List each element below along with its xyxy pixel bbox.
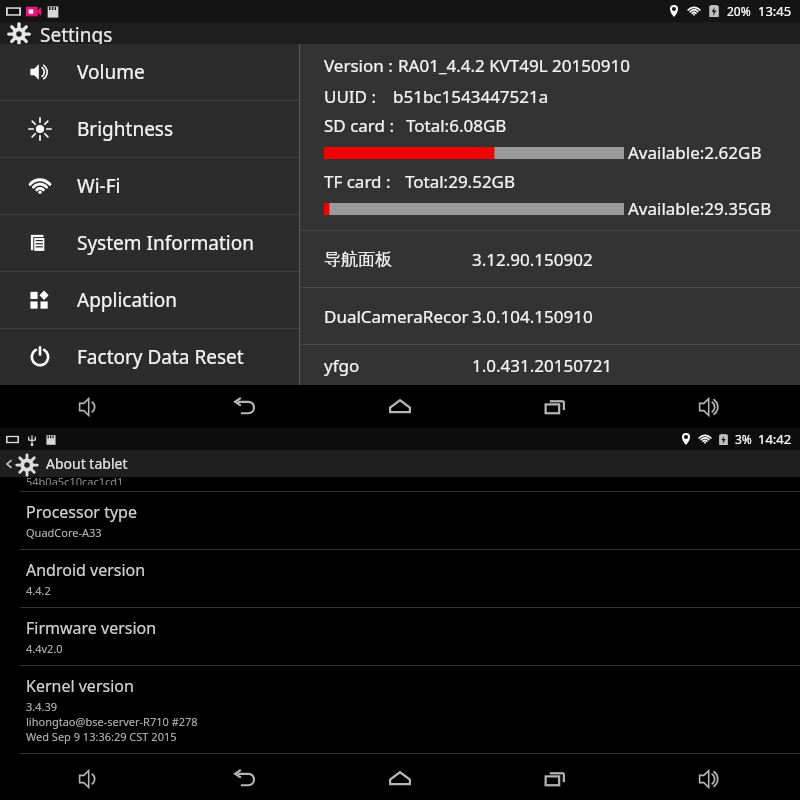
button[interactable]: Firmware version — [0, 608, 800, 665]
staticText: yfgo — [324, 354, 360, 377]
staticText: b51bc1543447521a — [393, 85, 549, 108]
button[interactable]: Home — [376, 387, 424, 427]
button[interactable]: Brightness — [0, 101, 299, 157]
button[interactable]: Processor type — [0, 492, 800, 549]
staticText: Factory Data Reset — [77, 344, 244, 370]
staticText: 13:45 — [758, 2, 792, 20]
button[interactable]: Home — [376, 759, 424, 799]
staticText: 3.12.90.150902 — [472, 248, 593, 271]
staticText: 4.4.2 — [26, 583, 51, 598]
staticText: Firmware version — [26, 617, 157, 639]
button[interactable]: Volume up — [686, 387, 734, 427]
button[interactable]: Volume down — [66, 387, 114, 427]
staticText: TF card : — [324, 170, 391, 193]
staticText: 3% — [735, 431, 752, 447]
staticText: Kernel version — [26, 675, 134, 697]
staticText: lihongtao@bse-server-R710 #278 — [26, 714, 198, 729]
button[interactable]: System Information — [0, 215, 299, 271]
staticText: Brightness — [77, 116, 174, 142]
staticText: SD card : — [324, 114, 394, 137]
staticText: Total:29.52GB — [405, 170, 516, 193]
staticText: Version : — [324, 54, 398, 77]
staticText: 4.4v2.0 — [26, 641, 63, 656]
button[interactable]: Recents — [531, 759, 579, 799]
button[interactable]: Recents — [531, 387, 579, 427]
button[interactable]: DualCameraRecord — [300, 288, 800, 344]
button[interactable]: 导航面板 — [300, 231, 800, 287]
button[interactable]: Back — [221, 759, 269, 799]
button[interactable]: Kernel version — [0, 666, 800, 753]
staticText: Application — [77, 287, 178, 313]
staticText: 54b0a5c10cac1cd1 — [26, 474, 124, 485]
staticText: 20% — [727, 3, 751, 19]
staticText: Android version — [26, 559, 146, 581]
staticText: Wed Sep 9 13:36:29 CST 2015 — [26, 729, 177, 744]
button[interactable]: Factory Data Reset — [0, 329, 299, 385]
staticText: Volume — [77, 59, 145, 85]
staticText: 导航面板 — [324, 249, 392, 270]
staticText: Total:6.08GB — [406, 114, 507, 137]
button[interactable]: Volume down — [66, 759, 114, 799]
staticText: 3.4.39 — [26, 699, 58, 714]
button[interactable]: Back — [221, 387, 269, 427]
staticText: DualCameraRecord — [324, 305, 472, 328]
staticText: QuadCore-A33 — [26, 525, 102, 540]
staticText: UUID : — [324, 85, 377, 108]
staticText: Settings — [40, 22, 113, 44]
button[interactable]: Application — [0, 272, 299, 328]
button[interactable]: Volume — [0, 44, 299, 100]
button[interactable]: Volume up — [686, 759, 734, 799]
button[interactable]: Android version — [0, 550, 800, 607]
staticText: 14:42 — [758, 430, 792, 448]
staticText: Available:29.35GB — [628, 197, 772, 220]
staticText: Wi-Fi — [77, 173, 121, 199]
staticText: About tablet — [46, 454, 128, 473]
staticText: RA01_4.4.2 KVT49L 20150910 — [398, 54, 630, 77]
staticText: System Information — [77, 230, 254, 256]
button[interactable]: Back — [0, 450, 800, 477]
other: Back — [4, 459, 14, 469]
staticText: 3.0.104.150910 — [472, 305, 593, 328]
staticText: 1.0.431.20150721 — [472, 354, 613, 377]
button[interactable]: Wi-Fi — [0, 158, 299, 214]
staticText: Available:2.62GB — [628, 141, 762, 164]
staticText: Processor type — [26, 501, 137, 523]
button[interactable]: yfgo — [300, 345, 800, 385]
